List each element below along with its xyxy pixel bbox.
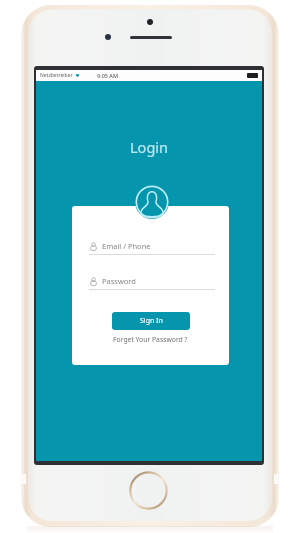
button[interactable]: Forget Your Password ? bbox=[105, 331, 196, 348]
staticText: 9:05 AM bbox=[97, 72, 119, 79]
staticText: Forget Your Password ? bbox=[113, 335, 188, 344]
button[interactable]: Sign In bbox=[112, 312, 190, 330]
button[interactable]: Password bbox=[72, 276, 229, 290]
button[interactable]: Home bbox=[129, 471, 168, 510]
staticText: Password bbox=[102, 276, 136, 286]
staticText: Sign In bbox=[140, 316, 163, 326]
staticText: Login bbox=[36, 137, 262, 157]
button[interactable]: User profile avatar bbox=[135, 185, 169, 219]
button[interactable]: Email / Phone bbox=[72, 241, 229, 255]
staticText: Netzbetreiber bbox=[40, 72, 73, 79]
staticText: Email / Phone bbox=[102, 241, 151, 251]
